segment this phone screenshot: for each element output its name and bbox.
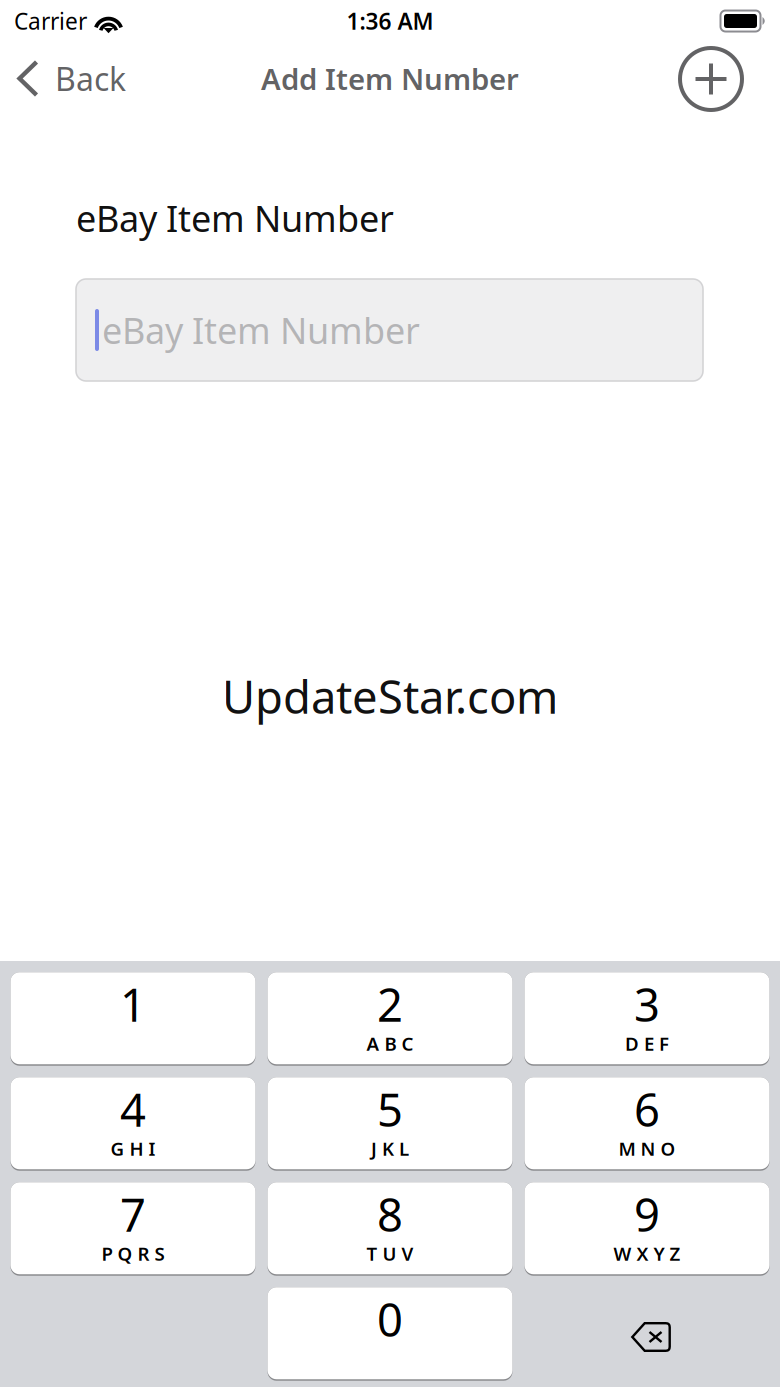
button[interactable]: 9 — [524, 1183, 769, 1275]
staticText: 1:36 AM — [346, 6, 433, 36]
staticText: Add Item Number — [261, 59, 519, 98]
staticText: eBay Item Number — [102, 306, 420, 354]
staticText: 6 — [634, 1079, 660, 1139]
button[interactable]: 6 — [524, 1078, 769, 1170]
staticText: T U V — [366, 1241, 413, 1266]
button[interactable]: 4 — [10, 1078, 255, 1170]
staticText: W X Y Z — [613, 1241, 680, 1266]
staticText: 1 — [120, 974, 146, 1034]
staticText: 2 — [377, 974, 403, 1034]
button[interactable]: 8 — [267, 1183, 512, 1275]
staticText: eBay Item Number — [76, 194, 394, 242]
button[interactable]: Delete — [524, 1288, 769, 1380]
staticText: 4 — [120, 1079, 146, 1139]
staticText: Carrier — [14, 6, 87, 36]
button[interactable]: 0 — [267, 1288, 512, 1380]
staticText: M N O — [618, 1136, 675, 1161]
staticText: 3 — [634, 974, 660, 1034]
button[interactable]: 3 — [524, 973, 769, 1065]
button[interactable]: 7 — [10, 1183, 255, 1275]
button[interactable]: 1 — [10, 973, 255, 1065]
staticText: P Q R S — [101, 1241, 164, 1266]
staticText: J K L — [371, 1136, 409, 1161]
staticText: 7 — [120, 1184, 146, 1244]
staticText: UpdateStar.com — [222, 666, 558, 726]
button[interactable]: 5 — [267, 1078, 512, 1170]
staticText: A B C — [366, 1031, 413, 1056]
button[interactable]: Back — [0, 42, 140, 122]
staticText: 9 — [634, 1184, 660, 1244]
staticText: 5 — [377, 1079, 403, 1139]
staticText: D E F — [625, 1031, 669, 1056]
staticText: G H I — [110, 1136, 155, 1161]
staticText: 8 — [377, 1184, 403, 1244]
staticText: 0 — [377, 1289, 403, 1349]
button[interactable]: Add — [660, 42, 780, 122]
button[interactable]: 2 — [267, 973, 512, 1065]
button[interactable]: eBay Item Number — [76, 279, 703, 381]
staticText: Back — [55, 57, 126, 100]
